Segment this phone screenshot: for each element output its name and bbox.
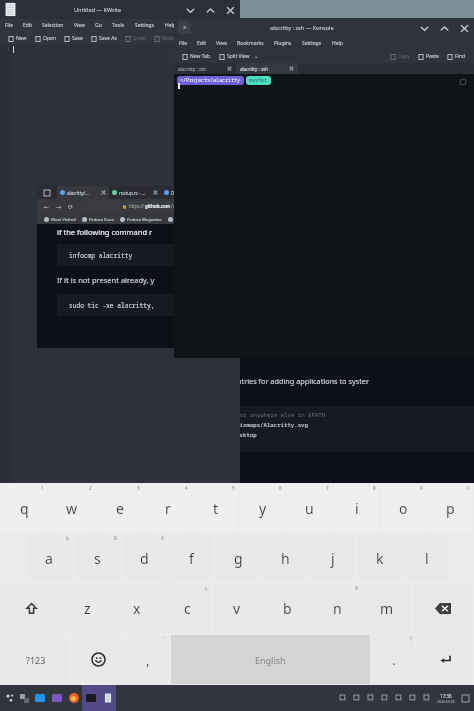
button[interactable]: Find	[443, 51, 470, 62]
button[interactable]: z	[63, 584, 111, 633]
button[interactable]: Settings	[130, 20, 160, 31]
button[interactable]: View	[69, 20, 90, 31]
button[interactable]: Save As	[87, 33, 121, 44]
button[interactable]: Up	[420, 691, 434, 705]
button[interactable]: 9	[381, 484, 426, 532]
button[interactable]: f	[169, 534, 214, 582]
button[interactable]: ←	[41, 200, 53, 212]
button[interactable]: Paste	[414, 51, 443, 62]
button[interactable]: rustup.rs - ...	[109, 186, 161, 199]
button[interactable]: alacritty/...	[57, 186, 109, 199]
button[interactable]: 0	[428, 484, 473, 532]
staticText: ñ	[355, 585, 358, 591]
button[interactable]: k	[357, 534, 402, 582]
button[interactable]: More	[350, 691, 364, 705]
button[interactable]: Close	[454, 19, 474, 37]
button[interactable]: Bookmarks	[232, 38, 269, 49]
button[interactable]: Tools	[107, 20, 130, 31]
button[interactable]: Fedora Docs	[79, 216, 117, 222]
button[interactable]: ç	[163, 584, 211, 633]
button[interactable]: 8	[334, 484, 379, 532]
button[interactable]: ß	[74, 534, 120, 582]
button[interactable]: Home tab	[37, 186, 57, 199]
button[interactable]: Plugins	[269, 38, 297, 49]
button[interactable]: Settings	[297, 38, 327, 49]
button[interactable]: Help	[160, 20, 181, 31]
button[interactable]: Open	[31, 33, 60, 44]
button[interactable]: v	[213, 584, 261, 633]
button[interactable]: Edit	[18, 20, 37, 31]
button[interactable]: 4	[145, 484, 191, 532]
button[interactable]: ä	[26, 534, 72, 582]
button[interactable]: Firefox	[65, 685, 82, 711]
button[interactable]	[72, 635, 124, 684]
button[interactable]: 7	[287, 484, 332, 532]
button[interactable]: Edit	[192, 38, 211, 49]
button[interactable]: Fedo	[165, 216, 188, 222]
button[interactable]	[413, 584, 473, 633]
button[interactable]: ⟳	[65, 200, 77, 212]
button[interactable]: Network	[406, 691, 420, 705]
button[interactable]: Minimize	[414, 19, 434, 37]
button[interactable]: alacritty : zsh	[174, 63, 236, 74]
button[interactable]: New Tab	[178, 51, 215, 62]
button[interactable]: Fedora Magazine	[117, 216, 165, 222]
button[interactable]: Maximize	[434, 19, 454, 37]
button[interactable]: 5	[193, 484, 238, 532]
button[interactable]: Show desktop	[17, 691, 31, 705]
staticText: Help	[165, 22, 176, 29]
button[interactable]: Save	[60, 33, 87, 44]
button[interactable]: KWrite	[99, 685, 116, 711]
button[interactable]: 3	[97, 484, 143, 532]
button[interactable]: l	[404, 534, 449, 582]
button[interactable]: 17:36	[434, 693, 458, 704]
button[interactable]: 2	[49, 484, 95, 532]
button[interactable]	[417, 635, 473, 684]
button[interactable]: Terminal	[82, 685, 99, 711]
button[interactable]: g	[216, 534, 261, 582]
button[interactable]: 1	[1, 484, 47, 532]
button[interactable]: b	[263, 584, 311, 633]
button[interactable]: Most Visited	[41, 216, 79, 222]
button[interactable]: '	[126, 635, 169, 684]
button[interactable]: Help	[327, 38, 348, 49]
button[interactable]: Files	[31, 685, 48, 711]
button[interactable]: Redo	[150, 33, 179, 44]
button[interactable]: Deve	[161, 186, 201, 199]
button[interactable]: ?	[372, 635, 415, 684]
staticText: Help	[332, 40, 343, 47]
button[interactable]: Split View	[215, 51, 254, 62]
button[interactable]: ñ	[313, 584, 361, 633]
button[interactable]: Close	[220, 1, 240, 19]
button[interactable]: Bluetooth	[392, 691, 406, 705]
button[interactable]: Minimize all	[458, 691, 472, 705]
button[interactable]: Dolphin	[48, 685, 65, 711]
button[interactable]: →	[53, 200, 65, 212]
button[interactable]: ð	[122, 534, 167, 582]
button[interactable]: New	[4, 33, 31, 44]
button[interactable]: Clipboard	[336, 691, 350, 705]
button[interactable]: Copy	[386, 51, 414, 62]
button[interactable]: ?123	[1, 635, 70, 684]
button[interactable]: Volume	[364, 691, 378, 705]
button[interactable]: alacritty : zsh	[236, 63, 298, 74]
button[interactable]: Go	[90, 20, 107, 31]
button[interactable]: English	[171, 635, 370, 684]
button[interactable]: 6	[240, 484, 285, 532]
button[interactable]: j	[310, 534, 355, 582]
button[interactable]: 🔒	[80, 201, 223, 211]
staticText: 2	[89, 485, 92, 491]
button[interactable]: Application launcher	[3, 691, 17, 705]
button[interactable]: Minimize	[180, 1, 200, 19]
button[interactable]: Selection	[37, 20, 69, 31]
button[interactable]: Maximize	[200, 1, 220, 19]
button[interactable]: View	[211, 38, 232, 49]
button[interactable]: h	[263, 534, 308, 582]
button[interactable]: x	[113, 584, 161, 633]
button[interactable]	[1, 584, 61, 633]
button[interactable]: m	[363, 584, 411, 633]
button[interactable]: Display	[378, 691, 392, 705]
button[interactable]: File	[0, 20, 18, 31]
button[interactable]: Undo	[121, 33, 150, 44]
button[interactable]: File	[174, 38, 192, 49]
